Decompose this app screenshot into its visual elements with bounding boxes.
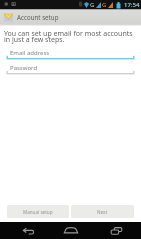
staticText: G xyxy=(90,1,95,9)
button[interactable]: Back xyxy=(4,222,46,239)
staticText: Account setup xyxy=(17,13,59,21)
button[interactable]: Next xyxy=(71,205,134,218)
button[interactable]: Manual setup xyxy=(7,205,69,218)
staticText: Password xyxy=(10,64,38,72)
staticText: Manual setup xyxy=(23,209,53,215)
staticText: G xyxy=(102,1,107,9)
staticText: Email address xyxy=(10,49,50,57)
staticText: 17:54 xyxy=(124,1,140,9)
staticText: You can set up email for most accounts i… xyxy=(4,29,137,44)
staticText: Next xyxy=(97,209,108,215)
button[interactable]: Recents xyxy=(95,222,137,239)
button[interactable]: Home xyxy=(50,222,92,239)
